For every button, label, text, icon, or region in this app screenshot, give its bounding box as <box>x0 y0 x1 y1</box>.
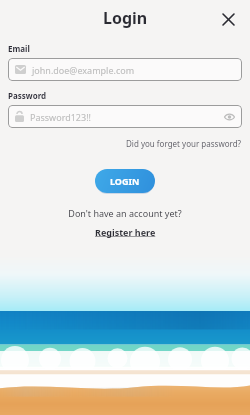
staticText: Password123!! <box>30 111 223 123</box>
button[interactable]: LOGIN <box>95 169 155 193</box>
button[interactable]: Register here <box>95 226 156 238</box>
staticText: Did you forget your password? <box>126 138 242 149</box>
staticText: Register here <box>95 226 156 238</box>
staticText: Don't have an account yet? <box>0 207 250 219</box>
button[interactable]: john.doe@example.com <box>8 58 242 81</box>
button[interactable]: Password123!! <box>8 105 242 128</box>
staticText: john.doe@example.com <box>32 64 235 76</box>
staticText: Password <box>8 90 47 101</box>
staticText: Email <box>8 43 30 54</box>
button[interactable]: Did you forget your password? <box>126 138 242 149</box>
button[interactable]: Close <box>216 7 240 31</box>
staticText: LOGIN <box>110 175 140 187</box>
button[interactable]: Show password <box>223 111 235 123</box>
staticText: Login <box>103 7 148 29</box>
